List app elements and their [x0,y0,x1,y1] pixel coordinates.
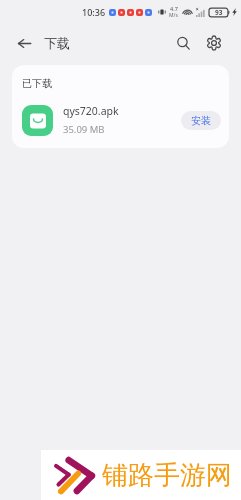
staticText: 下载 [44,35,70,51]
staticText: 10:36 [82,6,106,18]
staticText: 安装 [191,114,211,127]
button[interactable]: Back [9,28,39,58]
staticText: 已下载 [22,77,52,90]
staticText: M/s [169,12,178,19]
button[interactable]: qys720.apk [22,104,221,136]
staticText: 93 [215,8,223,17]
staticText: 铺路手游网 [102,459,232,492]
button[interactable]: Search [168,28,198,58]
button[interactable]: 安装 [181,111,221,130]
staticText: 4.7 [170,5,178,12]
staticText: 35.09 MB [63,123,105,136]
button[interactable]: Settings [199,28,229,58]
staticText: qys720.apk [63,104,119,118]
